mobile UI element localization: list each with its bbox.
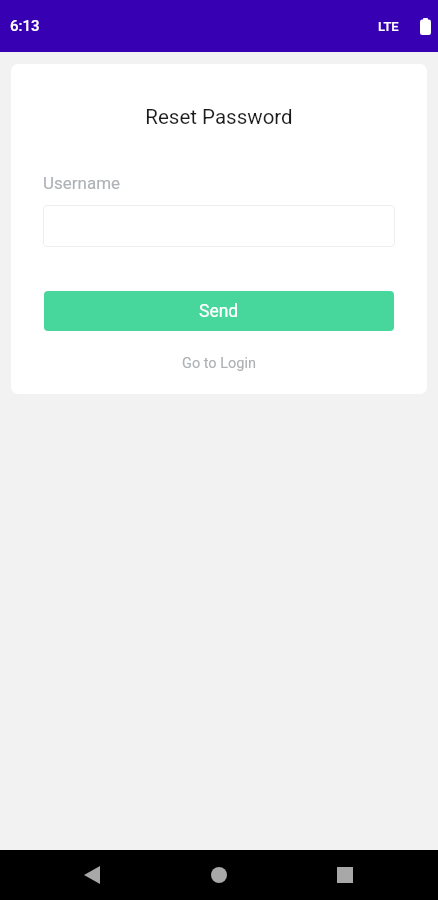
button[interactable]: Send bbox=[44, 291, 394, 331]
button[interactable]: Recent apps bbox=[320, 850, 370, 900]
button[interactable]: Back bbox=[67, 850, 117, 900]
staticText: LTE bbox=[378, 19, 399, 34]
staticText: Reset Password bbox=[11, 105, 427, 129]
staticText: 6:13 bbox=[10, 17, 40, 35]
button[interactable]: Home bbox=[194, 850, 244, 900]
button[interactable]: Go to Login bbox=[11, 350, 427, 376]
staticText: Send bbox=[199, 301, 239, 322]
staticText: Username bbox=[43, 173, 121, 193]
staticText: Go to Login bbox=[182, 355, 256, 372]
button[interactable] bbox=[43, 205, 395, 247]
